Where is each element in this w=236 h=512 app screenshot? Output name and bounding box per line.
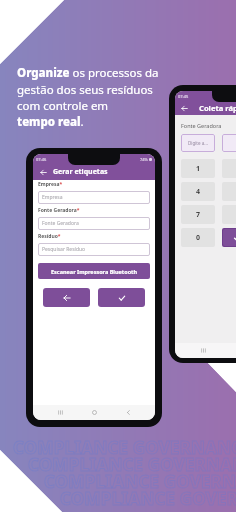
button[interactable]: 7 [181, 205, 215, 224]
staticText: Digite a... [188, 140, 208, 146]
staticText: 07:45 [178, 94, 189, 99]
staticText: 4 [196, 187, 201, 197]
staticText: Empresa [42, 194, 63, 201]
button[interactable]: Início [91, 409, 98, 416]
staticText: 0 [196, 233, 201, 243]
button[interactable]: Confirmar [223, 229, 236, 246]
button[interactable]: 4 [181, 182, 215, 201]
button[interactable]: Pesquisar Resíduo [38, 243, 150, 256]
staticText: Escanear Impressora Bluetooth [51, 268, 138, 275]
staticText: Pesquisar Resíduo [42, 246, 86, 253]
staticText: 1 [196, 164, 201, 174]
staticText: Coleta rápida [199, 103, 236, 113]
staticText: Organize os processos da gestão dos seus… [17, 65, 159, 129]
staticText: Gerar etiquetas [53, 167, 108, 177]
button[interactable]: Voltar [43, 288, 90, 307]
staticText: Fonte Geradora [42, 220, 79, 227]
staticText: Resíduo* [38, 233, 61, 240]
staticText: 07:46 [36, 157, 47, 162]
button[interactable]: Recentes [200, 347, 207, 354]
button[interactable]: Recentes [57, 409, 64, 416]
staticText: COMPLIANCE GOVERNANCE COMPLIANCE GOVERNA… [44, 470, 236, 493]
button[interactable]: Escanear Impressora Bluetooth [38, 263, 150, 279]
staticText: COMPLIANCE GOVERNANCE COMPLIANCE GOVERNA… [13, 436, 236, 459]
button[interactable]: Back [38, 167, 48, 177]
button[interactable]: 1 [181, 159, 215, 178]
button[interactable]: Back [180, 104, 189, 113]
button[interactable]: Fonte Geradora [38, 217, 150, 230]
staticText: COMPLIANCE GOVERNANCE COMPLIANCE GOVERNA… [28, 453, 236, 476]
staticText: 7 [196, 210, 201, 220]
button[interactable]: Digite a... [181, 134, 215, 152]
button[interactable] [222, 134, 236, 152]
button[interactable]: 0 [181, 228, 215, 247]
staticText: Fonte Geradora* [38, 207, 80, 214]
staticText: 74% [140, 157, 148, 162]
button[interactable]: Empresa [38, 191, 150, 204]
staticText: COMPLIANCE GOVERNANCE COMPLIANCE GOVERNA… [60, 487, 236, 510]
staticText: Empresa* [38, 181, 63, 188]
button[interactable]: Confirmar [98, 288, 145, 307]
staticText: Fonte Geradora [181, 122, 222, 129]
button[interactable]: Voltar [125, 409, 132, 416]
